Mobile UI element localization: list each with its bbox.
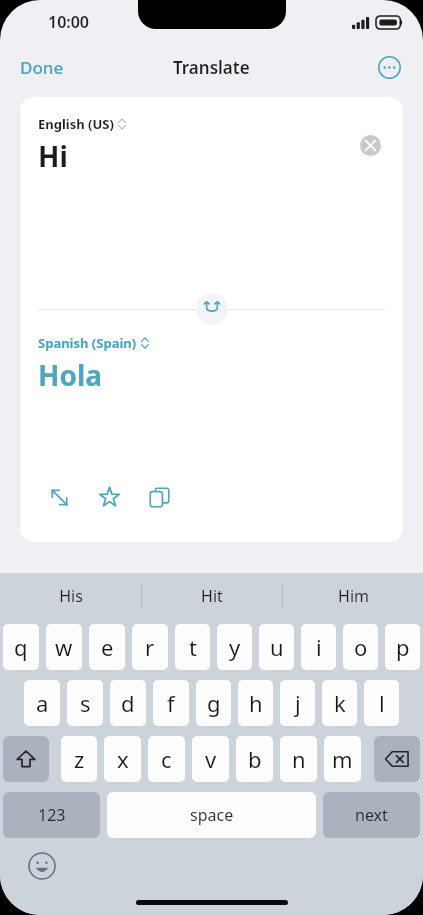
staticText: e	[101, 632, 114, 662]
staticText: z	[74, 744, 85, 774]
staticText: Hit	[201, 585, 223, 607]
button[interactable]: z	[61, 736, 97, 782]
button[interactable]: y	[217, 624, 252, 670]
staticText: v	[205, 744, 217, 774]
button[interactable]: i	[301, 624, 336, 670]
button[interactable]: Hit	[142, 573, 282, 619]
staticText: c	[161, 744, 172, 774]
button[interactable]: x	[104, 736, 141, 782]
button[interactable]: 123	[3, 792, 100, 838]
button[interactable]: u	[259, 624, 294, 670]
button[interactable]: More options	[378, 56, 401, 79]
button[interactable]: Full screen	[44, 482, 74, 512]
staticText: j	[295, 688, 301, 718]
staticText: s	[80, 688, 91, 718]
button[interactable]: v	[192, 736, 229, 782]
button[interactable]: m	[324, 736, 361, 782]
staticText: q	[14, 632, 28, 662]
staticText: f	[167, 688, 175, 718]
staticText: Done	[20, 56, 64, 79]
button[interactable]: g	[196, 680, 231, 726]
staticText: Him	[338, 585, 369, 607]
staticText: English (US)	[38, 115, 114, 133]
staticText: p	[396, 632, 410, 662]
button[interactable]: Swap languages	[196, 293, 228, 325]
button[interactable]: Him	[283, 573, 423, 619]
staticText: n	[292, 744, 306, 774]
button[interactable]: Copy translation	[144, 482, 174, 512]
button[interactable]: r	[132, 624, 168, 670]
staticText: r	[145, 632, 155, 662]
button[interactable]: d	[110, 680, 146, 726]
staticText: o	[354, 632, 368, 662]
button[interactable]: k	[322, 680, 357, 726]
staticText: d	[121, 688, 135, 718]
staticText: Spanish (Spain)	[38, 334, 137, 352]
button[interactable]: f	[153, 680, 189, 726]
staticText: b	[248, 744, 262, 774]
staticText: y	[229, 632, 241, 662]
staticText: Hola	[38, 356, 103, 394]
button[interactable]: s	[67, 680, 103, 726]
button[interactable]: c	[148, 736, 185, 782]
staticText: t	[189, 632, 197, 662]
button[interactable]: Clear text	[360, 135, 381, 156]
button[interactable]: b	[236, 736, 273, 782]
staticText: 123	[38, 804, 66, 826]
button[interactable]: o	[343, 624, 378, 670]
staticText: w	[55, 632, 73, 662]
button[interactable]: Shift	[3, 736, 49, 782]
staticText: h	[249, 688, 263, 718]
button[interactable]: Favorite	[94, 482, 124, 512]
button[interactable]: next	[323, 792, 420, 838]
button[interactable]: Emoji keyboard	[28, 852, 56, 880]
button[interactable]: p	[385, 624, 420, 670]
button[interactable]: His	[0, 573, 141, 619]
button[interactable]: Spanish (Spain)	[38, 334, 149, 352]
button[interactable]: l	[364, 680, 399, 726]
staticText: space	[190, 804, 234, 826]
button[interactable]: h	[238, 680, 273, 726]
staticText: His	[59, 585, 83, 607]
staticText: Translate	[173, 56, 250, 79]
button[interactable]: n	[280, 736, 317, 782]
staticText: m	[332, 744, 353, 774]
staticText: Hi	[38, 137, 68, 175]
button[interactable]: e	[89, 624, 125, 670]
staticText: k	[334, 688, 346, 718]
staticText: i	[316, 632, 322, 662]
staticText: next	[355, 804, 388, 826]
staticText: g	[207, 688, 221, 718]
button[interactable]: space	[107, 792, 316, 838]
staticText: a	[36, 688, 49, 718]
staticText: l	[379, 688, 385, 718]
button[interactable]: t	[175, 624, 210, 670]
button[interactable]: j	[280, 680, 315, 726]
button[interactable]: English (US)	[38, 115, 126, 133]
button[interactable]: w	[46, 624, 82, 670]
staticText: x	[117, 744, 129, 774]
button[interactable]: a	[24, 680, 60, 726]
staticText: 10:00	[48, 11, 90, 33]
staticText: u	[270, 632, 284, 662]
button[interactable]: Done	[0, 48, 84, 87]
button[interactable]: q	[3, 624, 39, 670]
button[interactable]: Delete	[374, 736, 420, 782]
